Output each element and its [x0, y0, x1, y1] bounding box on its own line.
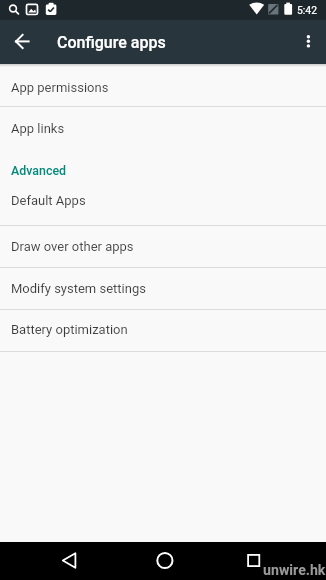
staticText: 5:42: [297, 4, 318, 16]
staticText: unwire.hk: [263, 562, 326, 579]
button[interactable]: Default Apps: [0, 176, 326, 225]
button[interactable]: Draw over other apps: [0, 226, 326, 267]
button[interactable]: [286, 20, 326, 64]
button[interactable]: [0, 542, 108, 580]
staticText: App links: [11, 121, 65, 136]
button[interactable]: Battery optimization: [0, 310, 326, 351]
button[interactable]: [108, 542, 217, 580]
button[interactable]: Modify system settings: [0, 268, 326, 309]
staticText: Default Apps: [11, 193, 86, 208]
staticText: Advanced: [11, 163, 67, 178]
button[interactable]: App links: [0, 107, 326, 150]
staticText: Draw over other apps: [11, 239, 134, 254]
staticText: Modify system settings: [11, 281, 146, 296]
staticText: App permissions: [11, 80, 109, 95]
button[interactable]: App permissions: [0, 64, 326, 106]
button[interactable]: [0, 20, 44, 64]
staticText: Battery optimization: [11, 322, 128, 337]
button[interactable]: [217, 542, 326, 580]
staticText: Configure apps: [57, 33, 166, 52]
